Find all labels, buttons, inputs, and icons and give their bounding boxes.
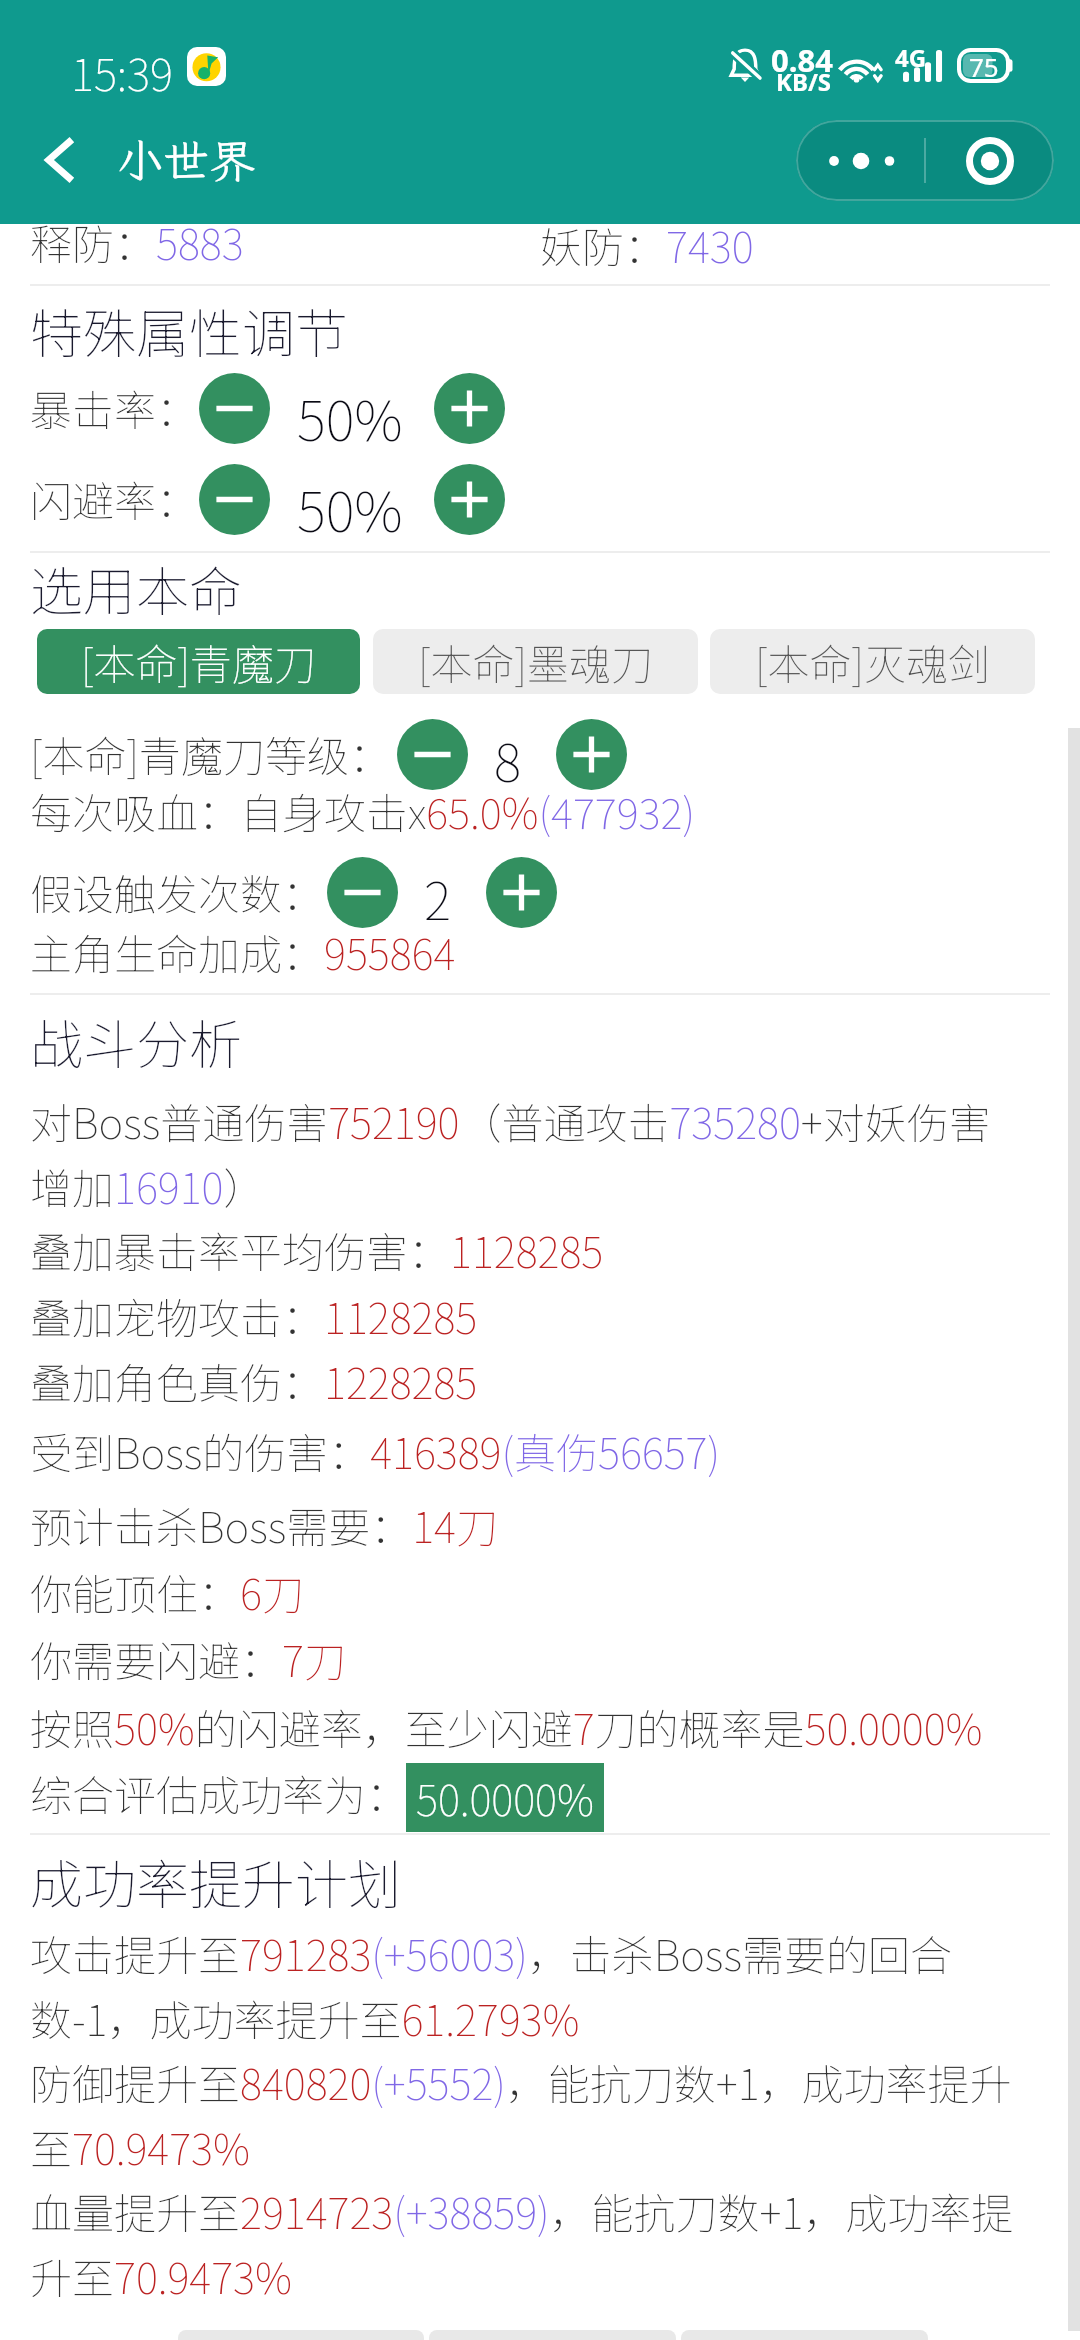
staticText: KB/S	[776, 65, 832, 98]
staticText: 你能顶住：6刀	[30, 1558, 1050, 1623]
staticText: 你需要闪避：7刀	[30, 1625, 1050, 1690]
staticText: 暴击率：	[30, 374, 199, 439]
staticText: [本命]青魔刀	[81, 631, 317, 692]
staticText: 妖防：7430	[540, 211, 754, 276]
staticText: 0.84	[771, 39, 833, 81]
staticText: 50%	[297, 377, 403, 457]
staticText: 小世界	[117, 130, 255, 191]
staticText: 血量提升至2914723(+38859)，能抗刀数+1，成功率提升至70.947…	[30, 2177, 1028, 2307]
staticText: [本命]灭魂剑	[755, 631, 991, 692]
staticText: 主角生命加成：955864	[30, 918, 1050, 983]
button[interactable]: [本命]墨魂刀	[373, 629, 698, 694]
staticText: 8	[494, 722, 522, 797]
button[interactable]: [本命]灭魂剑	[710, 629, 1035, 694]
staticText: 选用本命	[30, 550, 242, 627]
staticText: 叠加宠物攻击：1128285	[30, 1282, 1050, 1347]
staticText: 成功率提升计划	[30, 1843, 401, 1920]
staticText: 每次吸血：自身攻击x65.0%(477932)	[30, 777, 1050, 842]
staticText: 75	[969, 49, 999, 80]
staticText: 释防：5883	[30, 208, 1050, 273]
staticText: 叠加暴击率平均伤害：1128285	[30, 1216, 1050, 1281]
button[interactable]: Close mini program	[925, 120, 1054, 201]
staticText: 战斗分析	[30, 1003, 242, 1080]
button[interactable]: Increase	[556, 719, 627, 790]
button[interactable]: Increase	[486, 857, 557, 928]
button[interactable]: Decrease	[199, 464, 270, 535]
staticText: 2	[424, 860, 452, 935]
staticText: 闪避率：	[30, 465, 199, 530]
button[interactable]: Decrease	[327, 857, 398, 928]
button[interactable]: More options	[796, 120, 925, 201]
staticText: 攻击提升至791283(+56003)，击杀Boss需要的回合数-1，成功率提升…	[30, 1919, 1040, 2049]
staticText: 受到Boss的伤害：416389(真伤56657)	[30, 1417, 1050, 1482]
staticText: 综合评估成功率为：	[30, 1759, 409, 1824]
button[interactable]: [本命]青魔刀	[37, 629, 360, 694]
staticText: [本命]墨魂刀	[418, 631, 654, 692]
button[interactable]: Increase	[434, 464, 505, 535]
staticText: 对Boss普通伤害752190（普通攻击735280+对妖伤害增加16910）	[30, 1087, 1028, 1217]
button[interactable]: Decrease	[199, 373, 270, 444]
staticText: 特殊属性调节	[30, 292, 348, 369]
staticText: 50%	[297, 468, 403, 548]
button[interactable]: Back	[27, 126, 95, 194]
staticText: 50.0000%	[416, 1767, 594, 1828]
staticText: [本命]青魔刀等级：	[30, 720, 392, 785]
staticText: 假设触发次数：	[30, 858, 325, 923]
staticText: 叠加角色真伤：1228285	[30, 1347, 1050, 1412]
staticText: 预计击杀Boss需要：14刀	[30, 1491, 1050, 1556]
button[interactable]: Decrease	[397, 719, 468, 790]
staticText: 按照50%的闪避率，至少闪避7刀的概率是50.0000%	[30, 1693, 1080, 1758]
staticText: 防御提升至840820(+5552)，能抗刀数+1，成功率提升至70.9473%	[30, 2048, 1034, 2178]
staticText: 15:39	[71, 40, 173, 104]
button[interactable]: Increase	[434, 373, 505, 444]
staticText: 4G	[895, 41, 927, 74]
